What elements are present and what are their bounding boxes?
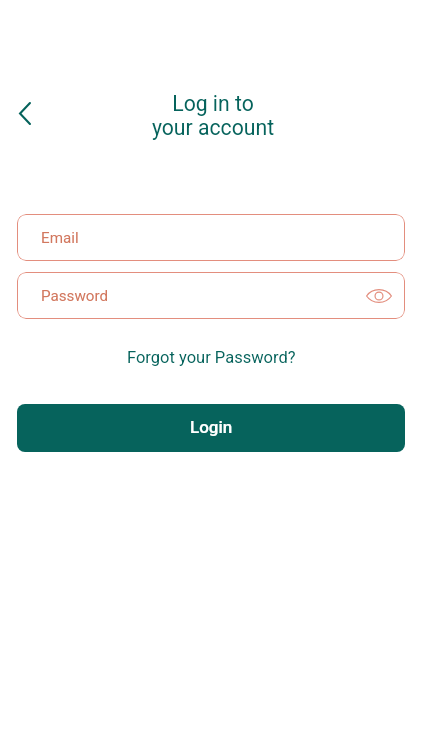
staticText: Email [41,229,79,247]
staticText: Login [190,417,233,437]
staticText: Password [41,287,109,305]
button[interactable]: Login [17,404,405,452]
button[interactable]: Back [5,93,45,133]
button[interactable]: Show password [361,278,397,314]
button[interactable]: Email [17,214,405,261]
staticText: Forgot your Password? [127,348,296,367]
staticText: Log in to your account [2,91,422,140]
button[interactable]: Password [17,272,405,319]
button[interactable]: Forgot your Password? [121,345,302,370]
